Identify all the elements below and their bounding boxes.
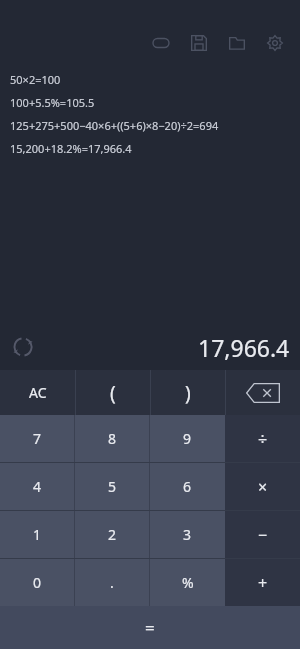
staticText: 1	[33, 525, 42, 544]
staticText: 5	[108, 477, 117, 496]
staticText: 0	[33, 573, 42, 592]
button[interactable]: 6	[150, 463, 225, 510]
staticText: 6	[183, 477, 192, 496]
button[interactable]: Save	[180, 24, 218, 62]
staticText: 9	[183, 429, 192, 448]
button[interactable]: +	[225, 559, 300, 606]
staticText: =	[145, 616, 155, 639]
button[interactable]: Backspace	[226, 370, 300, 415]
button[interactable]: 0	[0, 559, 74, 606]
button[interactable]: 5	[75, 463, 149, 510]
button[interactable]: Open	[218, 24, 256, 62]
button[interactable]: (	[76, 370, 150, 415]
staticText: 8	[108, 429, 117, 448]
staticText: 50×2=100	[10, 72, 61, 87]
button[interactable]: 9	[150, 415, 225, 462]
button[interactable]: 4	[0, 463, 74, 510]
button[interactable]: 1	[0, 511, 74, 558]
button[interactable]: 2	[75, 511, 149, 558]
staticText: 7	[33, 429, 42, 448]
staticText: .	[110, 573, 114, 592]
button[interactable]: 8	[75, 415, 149, 462]
staticText: ×	[258, 476, 268, 498]
staticText: AC	[29, 383, 47, 402]
button[interactable]: Display	[142, 24, 180, 62]
button[interactable]: ×	[225, 463, 300, 510]
staticText: (	[110, 380, 116, 406]
button[interactable]: )	[151, 370, 225, 415]
staticText: %	[182, 573, 194, 592]
button[interactable]: %	[150, 559, 225, 606]
staticText: ÷	[258, 428, 268, 450]
staticText: 2	[108, 525, 117, 544]
staticText: 17,966.4	[198, 332, 290, 363]
staticText: )	[185, 380, 191, 406]
button[interactable]: AC	[0, 370, 75, 415]
button[interactable]: −	[225, 511, 300, 558]
staticText: −	[258, 524, 268, 546]
button[interactable]: =	[0, 606, 300, 649]
button[interactable]: Settings	[256, 24, 294, 62]
staticText: 4	[33, 477, 42, 496]
staticText: 100+5.5%=105.5	[10, 95, 95, 110]
staticText: +	[258, 572, 268, 594]
button[interactable]: .	[75, 559, 149, 606]
button[interactable]: ÷	[225, 415, 300, 462]
staticText: 15,200+18.2%=17,966.4	[10, 141, 132, 156]
button[interactable]: 3	[150, 511, 225, 558]
button[interactable]: History	[10, 334, 36, 360]
button[interactable]: 7	[0, 415, 74, 462]
staticText: 3	[183, 525, 192, 544]
staticText: 125+275+500−40×6+((5+6)×8−20)÷2=694	[10, 118, 219, 133]
